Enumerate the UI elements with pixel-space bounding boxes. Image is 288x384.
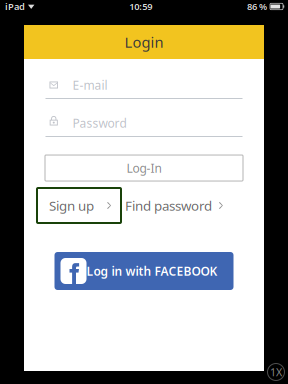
staticText: Sign up [49, 197, 94, 214]
button[interactable]: Find password [125, 188, 235, 223]
staticText: Password [72, 115, 126, 131]
button[interactable]: Log in with FACEBOOK [54, 252, 233, 290]
staticText: iPad [5, 0, 25, 13]
button[interactable]: Log-In [45, 155, 243, 181]
staticText: 10:59 [129, 0, 152, 13]
staticText: E-mail [72, 77, 107, 93]
button[interactable]: Sign up [37, 188, 121, 223]
staticText: Log in with FACEBOOK [86, 263, 217, 279]
staticText: Log-In [126, 160, 161, 176]
staticText: Login [124, 32, 163, 52]
staticText: 1X [270, 365, 282, 379]
staticText: Find password [125, 197, 212, 214]
staticText: 86 % [247, 0, 267, 13]
